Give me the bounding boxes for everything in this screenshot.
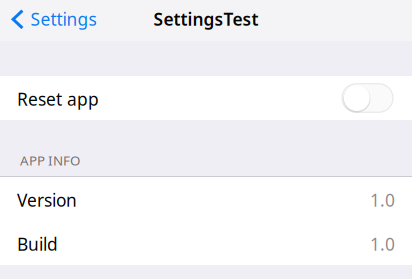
staticText: SettingsTest: [153, 7, 258, 30]
staticText: 1.0: [370, 188, 395, 211]
staticText: Build: [17, 232, 58, 255]
staticText: Reset app: [17, 87, 99, 110]
button[interactable]: Settings: [0, 0, 104, 41]
staticText: Version: [17, 188, 77, 211]
button[interactable]: Reset app: [342, 84, 393, 112]
staticText: Settings: [30, 7, 96, 30]
staticText: 1.0: [370, 232, 395, 255]
staticText: APP INFO: [20, 152, 80, 169]
button[interactable]: Build: [0, 221, 412, 265]
button[interactable]: Version: [0, 177, 412, 221]
